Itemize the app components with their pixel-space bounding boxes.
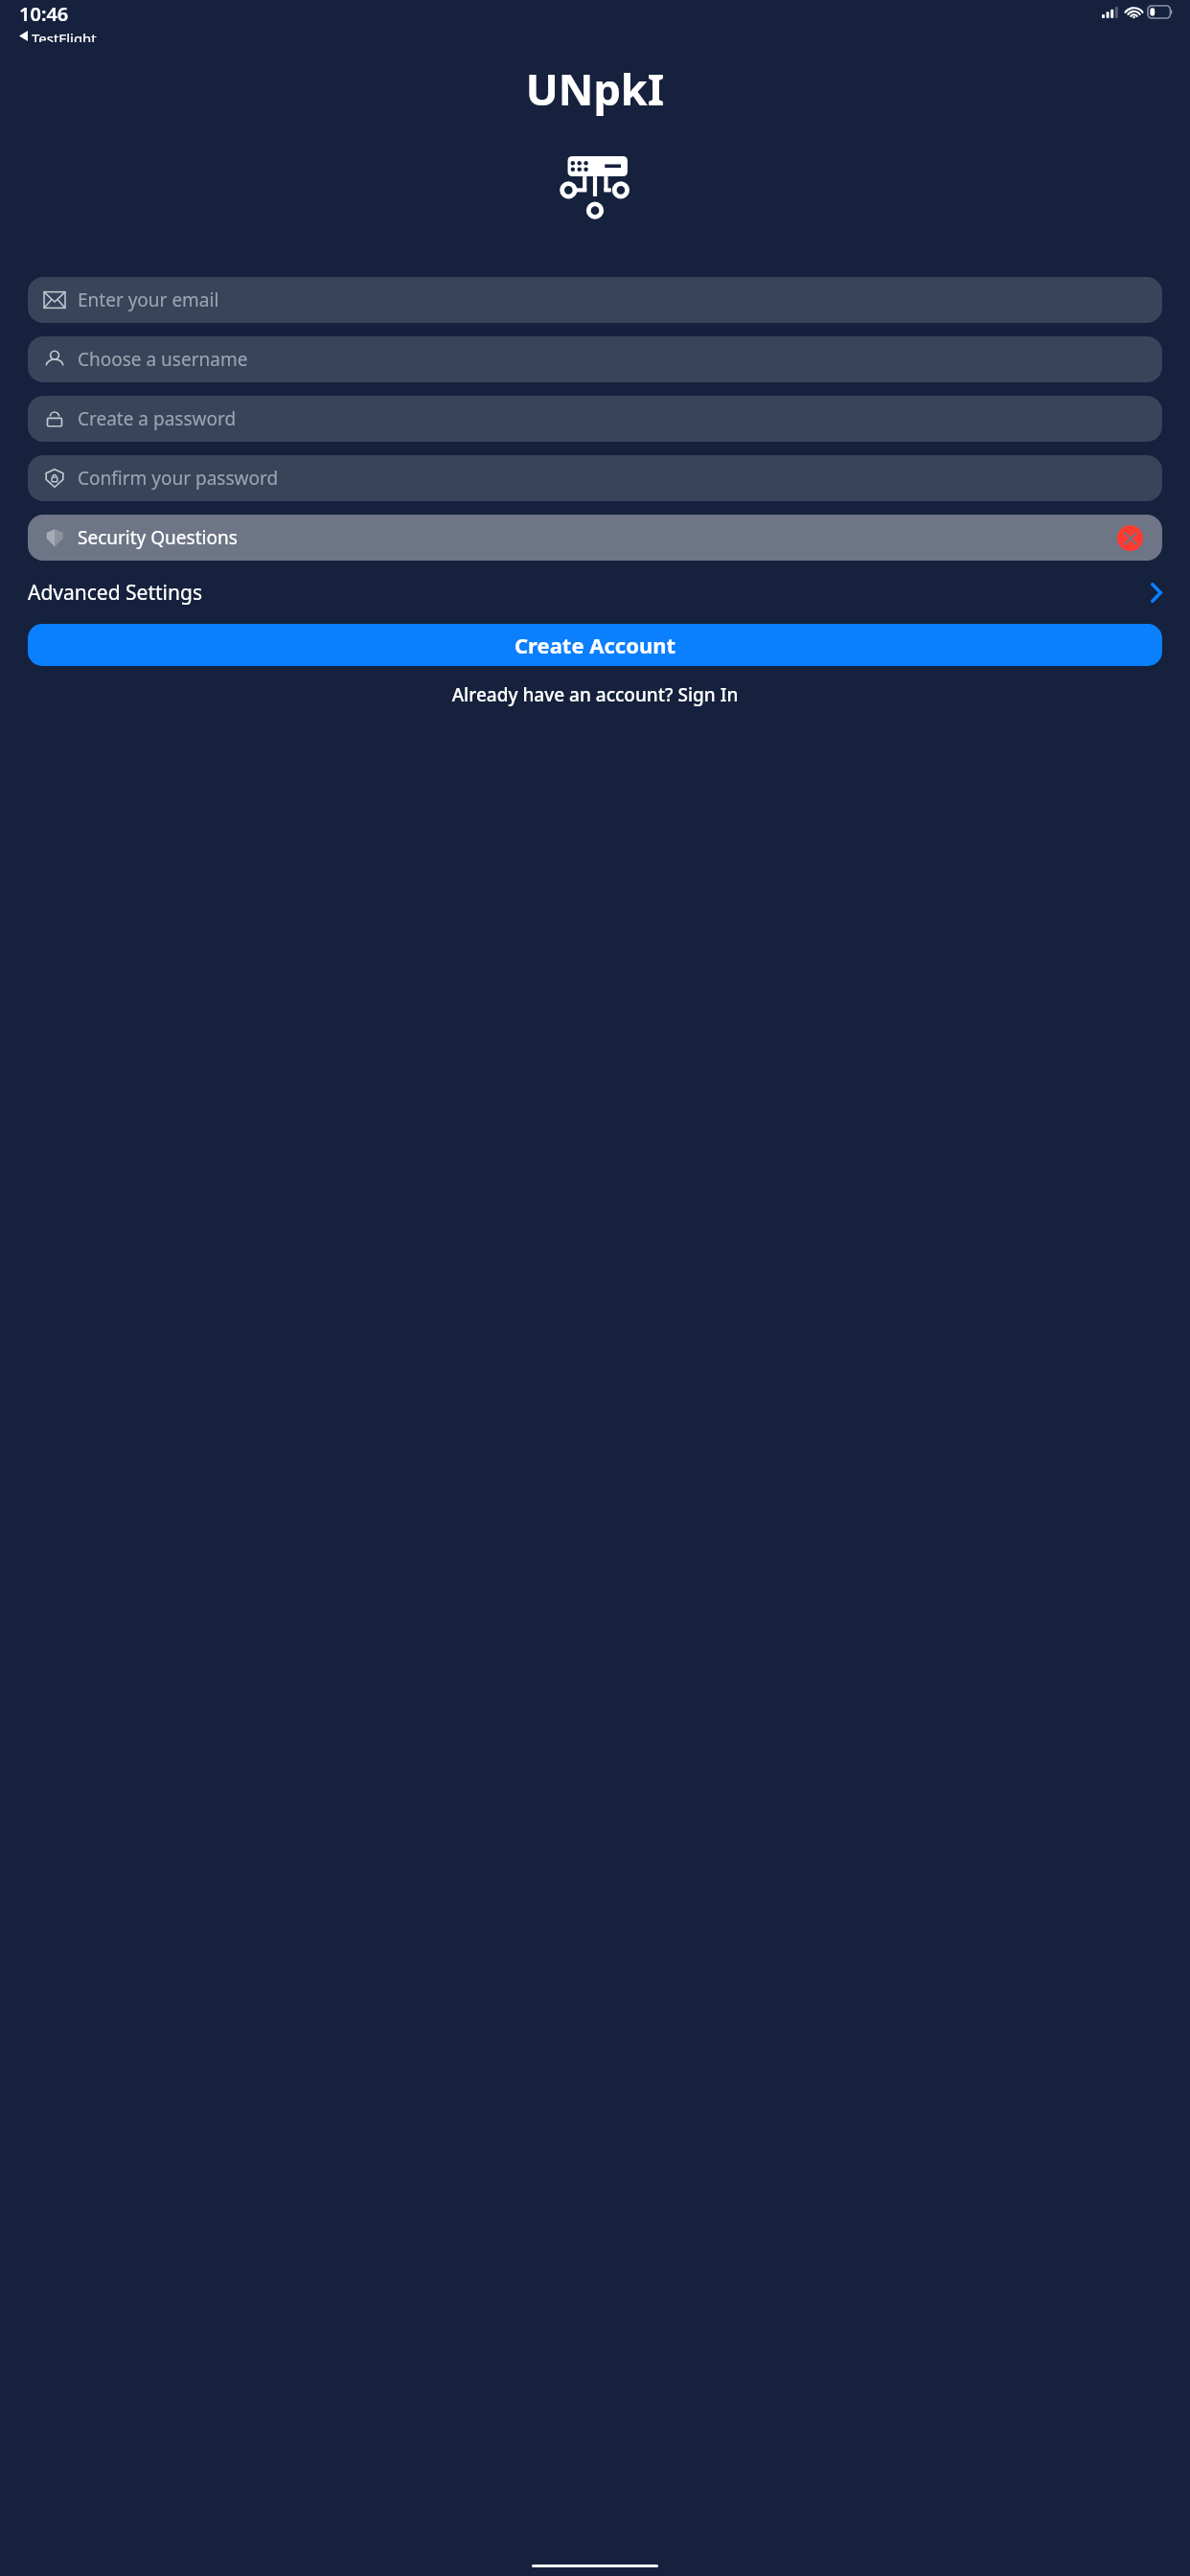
- staticText: Security Questions: [78, 525, 238, 550]
- button[interactable]: Confirm your password: [28, 455, 1162, 501]
- other: UNpkI logo: [558, 156, 632, 218]
- button[interactable]: Create a password: [28, 396, 1162, 442]
- button[interactable]: Enter your email: [28, 277, 1162, 323]
- staticText: Advanced Settings: [28, 579, 202, 607]
- staticText: Create a password: [78, 406, 237, 431]
- staticText: Choose a username: [78, 347, 248, 372]
- button[interactable]: Create Account: [28, 624, 1162, 666]
- staticText: Confirm your password: [78, 466, 279, 491]
- staticText: Enter your email: [78, 287, 219, 312]
- button[interactable]: Security Questions: [28, 515, 1162, 561]
- staticText: 10:46: [19, 1, 69, 27]
- staticText: TestFlight: [32, 29, 97, 42]
- button[interactable]: Already have an account? Sign In: [0, 678, 1190, 711]
- staticText: UNpkI: [0, 59, 1190, 118]
- staticText: Create Account: [515, 631, 676, 659]
- button[interactable]: Choose a username: [28, 336, 1162, 382]
- button[interactable]: Advanced Settings: [0, 570, 1190, 615]
- button[interactable]: Remove security questions: [1117, 525, 1143, 551]
